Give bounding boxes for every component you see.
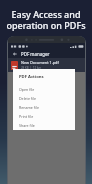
button[interactable]: New Document 1.pdf [8,58,85,72]
button[interactable]: Open file [19,85,71,94]
button[interactable]: Print file [19,112,71,121]
staticText: Delete file [19,96,36,101]
button[interactable]: Share file [19,121,71,130]
button[interactable]: Back [11,50,18,57]
staticText: Print file [19,114,34,119]
staticText: Easy Access and operation on PDFs [6,8,86,31]
staticText: Share file [19,123,35,128]
staticText: New Document 1.pdf [21,60,59,65]
button[interactable]: Delete file [19,94,71,103]
staticText: PDF Actions [19,74,44,80]
staticText: 28 KB | 12 Jun [21,66,42,70]
staticText: Rename file [19,105,39,110]
staticText: Open file [19,87,35,92]
staticText: PDF manager [21,51,50,57]
button[interactable]: Rename file [19,103,71,112]
